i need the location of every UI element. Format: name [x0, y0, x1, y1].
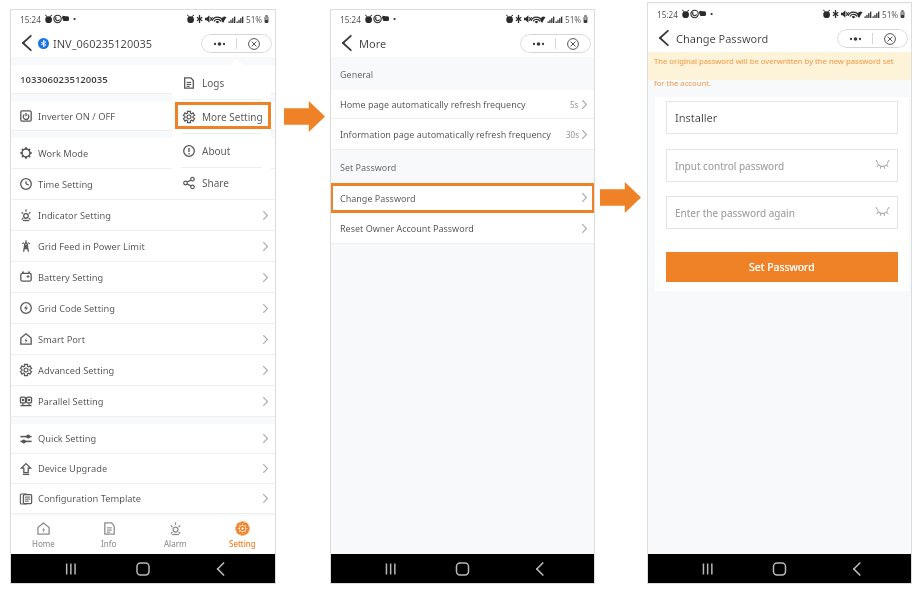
staticText: Enter the password again — [675, 206, 795, 220]
button[interactable]: Logs — [172, 66, 271, 99]
staticText: INV_060235120035 — [53, 36, 153, 51]
staticText: Home page automatically refresh frequenc… — [340, 98, 526, 110]
staticText: More — [359, 36, 387, 51]
staticText: 15:24 — [657, 9, 678, 20]
button[interactable]: Smart Port — [10, 324, 276, 354]
button[interactable]: Battery Setting — [10, 262, 276, 292]
staticText: Work Mode — [38, 147, 89, 160]
button[interactable]: Indicator Setting — [10, 200, 276, 230]
button[interactable]: More options — [521, 34, 555, 53]
button[interactable]: Close — [873, 29, 907, 48]
staticText: 15:24 — [20, 14, 41, 25]
staticText: 51% — [246, 14, 263, 25]
button[interactable]: Alarm — [142, 516, 209, 554]
staticText: Input control password — [675, 159, 785, 173]
staticText: Logs — [202, 76, 225, 90]
button[interactable]: Inverter ON / OFF — [10, 102, 276, 130]
staticText: Battery Setting — [38, 271, 104, 284]
button[interactable]: Grid Feed in Power Limit — [10, 231, 276, 261]
button[interactable]: Home page automatically refresh frequenc… — [330, 90, 595, 118]
button[interactable]: Share — [172, 168, 271, 197]
button[interactable]: Close — [237, 34, 271, 53]
staticText: Alarm — [164, 538, 187, 549]
staticText: Setting — [229, 538, 256, 549]
button[interactable]: Work Mode — [10, 138, 276, 168]
button[interactable]: Grid Code Setting — [10, 293, 276, 323]
button[interactable]: Set Password — [666, 252, 898, 282]
button[interactable]: Info — [76, 516, 142, 554]
staticText: Time Setting — [38, 178, 93, 191]
staticText: General — [340, 68, 374, 80]
button[interactable]: Device Upgrade — [10, 454, 276, 483]
staticText: 51% — [565, 14, 582, 25]
staticText: Advanced Setting — [38, 364, 115, 377]
staticText: 5s — [570, 99, 579, 110]
button[interactable]: Reset Owner Account Password — [330, 213, 595, 243]
staticText: Parallel Setting — [38, 395, 104, 408]
staticText: Home — [32, 538, 55, 549]
button[interactable]: Time Setting — [10, 169, 276, 199]
button[interactable]: Advanced Setting — [10, 355, 276, 385]
staticText: Installer — [675, 110, 718, 125]
button[interactable]: Parallel Setting — [10, 386, 276, 416]
staticText: 51% — [882, 9, 899, 20]
staticText: More Setting — [202, 110, 263, 124]
button[interactable]: More options — [838, 29, 872, 48]
button[interactable]: About — [172, 134, 271, 167]
button[interactable]: Setting — [209, 516, 276, 554]
staticText: About — [202, 144, 231, 158]
staticText: Set Password — [340, 161, 397, 173]
button[interactable]: 1033060235120035 — [10, 65, 276, 93]
button[interactable]: Enter the password again — [666, 196, 898, 229]
button[interactable]: Back — [337, 33, 357, 53]
staticText: 15:24 — [340, 14, 361, 25]
button[interactable]: Home — [10, 516, 76, 554]
button[interactable]: Quick Setting — [10, 424, 276, 453]
staticText: Inverter ON / OFF — [38, 110, 116, 123]
staticText: Grid Feed in Power Limit — [38, 240, 145, 253]
button[interactable]: Configuration Template — [10, 484, 276, 513]
button[interactable]: Installer — [666, 101, 898, 134]
staticText: Device Upgrade — [38, 462, 108, 475]
button[interactable]: Information page automatically refresh f… — [330, 119, 595, 149]
staticText: Info — [101, 538, 117, 549]
staticText: 30s — [566, 129, 579, 140]
staticText: Indicator Setting — [38, 209, 111, 222]
staticText: The original password will be overwritte… — [654, 56, 903, 89]
staticText: Information page automatically refresh f… — [340, 128, 551, 140]
staticText: 1033060235120035 — [20, 73, 108, 86]
button[interactable]: Back — [654, 28, 674, 48]
staticText: Quick Setting — [38, 432, 97, 445]
button[interactable]: More options — [202, 34, 236, 53]
staticText: Smart Port — [38, 333, 86, 346]
button[interactable]: Input control password — [666, 149, 898, 182]
staticText: Grid Code Setting — [38, 302, 115, 315]
button[interactable]: Back — [17, 33, 37, 53]
staticText: Set Password — [749, 260, 815, 274]
staticText: Share — [202, 176, 229, 190]
staticText: Change Password — [340, 192, 416, 204]
button[interactable]: More Setting — [172, 100, 271, 133]
staticText: Reset Owner Account Password — [340, 222, 474, 234]
staticText: Configuration Template — [38, 492, 142, 505]
button[interactable]: Close — [556, 34, 590, 53]
staticText: Change Password — [676, 31, 769, 46]
button[interactable]: Change Password — [330, 183, 595, 212]
